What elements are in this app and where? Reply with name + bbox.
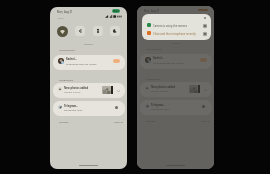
staticText: · 3m: [73, 104, 78, 107]
staticText: Google Photos: [151, 89, 168, 92]
button[interactable]: Expand: [201, 104, 206, 109]
button[interactable]: Close: [202, 15, 207, 20]
button[interactable]: Bluetooth: [162, 25, 172, 35]
button[interactable]: New photos added: [53, 83, 125, 98]
button[interactable]: Flashlight: [93, 26, 103, 36]
staticText: Notifications: [59, 78, 74, 81]
button[interactable]: New photos added: [140, 82, 212, 97]
staticText: Telegram: [151, 103, 164, 107]
button[interactable]: Internet: [144, 25, 155, 36]
button[interactable]: Clear all: [199, 117, 212, 123]
staticText: · 2m: [72, 57, 77, 60]
button[interactable]: Flashlight: [180, 25, 190, 35]
button[interactable]: Internet: [57, 26, 68, 37]
staticText: New photos added: [64, 86, 89, 90]
staticText: New photos added: [151, 85, 176, 89]
staticText: Sure! what time you home?: [66, 62, 97, 65]
staticText: Conversations: [59, 48, 76, 51]
staticText: Chat used the microphone recently: [153, 32, 196, 36]
staticText: Telegram: [64, 104, 77, 108]
button[interactable]: Do not disturb: [110, 26, 120, 36]
staticText: Sure! what time you home?: [153, 61, 184, 64]
staticText: Manage: [146, 119, 156, 122]
button[interactable]: Settings: [203, 24, 207, 28]
staticText: Mon, Aug 21: [144, 9, 160, 13]
staticText: · 1h: [84, 86, 89, 89]
button[interactable]: Telegram: [53, 101, 125, 116]
button[interactable]: Reply: [113, 59, 120, 63]
button[interactable]: Do not disturb: [197, 25, 207, 35]
button[interactable]: Clear all: [112, 118, 125, 124]
staticText: Conversations: [146, 47, 163, 50]
staticText: Clear all: [114, 120, 124, 123]
staticText: Did we win that?: [64, 108, 83, 111]
staticText: · 3m: [160, 103, 165, 106]
staticText: Wi-Fi: [58, 16, 64, 19]
button[interactable]: Bluetooth: [75, 26, 85, 36]
staticText: · 1h: [171, 85, 176, 88]
staticText: Google Photos: [64, 90, 81, 93]
button[interactable]: Manage: [57, 118, 71, 124]
staticText: Rachel: [66, 57, 75, 61]
button[interactable]: Manage: [144, 117, 158, 123]
button[interactable]: Rachel: [53, 55, 125, 70]
staticText: Camera is using the camera: [153, 24, 187, 28]
button[interactable]: Rachel: [140, 54, 212, 69]
staticText: Rachel: [153, 56, 162, 60]
button[interactable]: Telegram: [140, 100, 212, 115]
staticText: Manage: [59, 120, 69, 123]
staticText: Mon, Aug 21: [57, 10, 73, 14]
staticText: Did we win that?: [151, 107, 170, 110]
staticText: Clear all: [201, 119, 211, 122]
button[interactable]: Expand: [114, 105, 119, 110]
staticText: · 2m: [159, 56, 164, 59]
button[interactable]: Chat used the microphone recently: [142, 30, 211, 37]
button[interactable]: Expand: [116, 89, 120, 93]
button[interactable]: Camera is using the camera: [142, 22, 211, 29]
staticText: Notifications: [146, 77, 161, 80]
button[interactable]: Expand: [203, 88, 207, 92]
button[interactable]: Reply: [200, 58, 207, 62]
button[interactable]: Settings: [203, 32, 207, 36]
